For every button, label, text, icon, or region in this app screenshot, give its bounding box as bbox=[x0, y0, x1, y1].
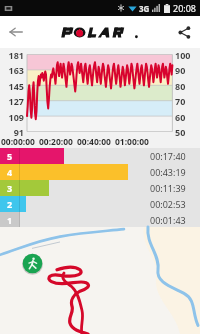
staticText: 50 bbox=[175, 126, 200, 138]
staticText: 163 bbox=[0, 64, 24, 76]
staticText: 00:40:00 bbox=[77, 136, 111, 148]
staticText: 00:00:00 bbox=[1, 136, 35, 148]
button[interactable]: 5 bbox=[0, 148, 200, 164]
staticText: 109 bbox=[0, 111, 24, 123]
staticText: 2 bbox=[7, 198, 13, 210]
staticText: 01:00:00 bbox=[115, 136, 149, 148]
staticText: 00:43:19 bbox=[150, 166, 186, 178]
staticText: 70 bbox=[175, 95, 200, 107]
staticText: 3G bbox=[139, 3, 150, 14]
staticText: 145 bbox=[0, 80, 24, 92]
staticText: 5 bbox=[7, 150, 13, 162]
staticText: 00:01:43 bbox=[150, 214, 186, 226]
staticText: 00:11:39 bbox=[150, 182, 186, 194]
staticText: 90 bbox=[175, 64, 200, 76]
staticText: 00:20:00 bbox=[39, 136, 73, 148]
staticText: 20:08 bbox=[173, 2, 197, 14]
staticText: 60 bbox=[175, 111, 200, 123]
staticText: 100 bbox=[175, 49, 200, 61]
button[interactable]: Back bbox=[0, 16, 32, 48]
staticText: 3 bbox=[7, 182, 13, 194]
button[interactable]: 1 bbox=[0, 212, 200, 227]
staticText: 00:17:40 bbox=[150, 150, 186, 162]
button[interactable]: 2 bbox=[0, 196, 200, 212]
staticText: 91 bbox=[0, 126, 24, 138]
staticText: 127 bbox=[0, 95, 24, 107]
button[interactable]: 3 bbox=[0, 180, 200, 196]
staticText: 181 bbox=[0, 49, 24, 61]
button[interactable]: Start point bbox=[22, 253, 43, 274]
button[interactable]: 4 bbox=[0, 164, 200, 180]
staticText: 4 bbox=[7, 166, 13, 178]
staticText: 1 bbox=[7, 214, 13, 226]
button[interactable]: Share bbox=[168, 16, 200, 48]
staticText: 00:02:53 bbox=[150, 198, 186, 210]
staticText: 80 bbox=[175, 80, 200, 92]
